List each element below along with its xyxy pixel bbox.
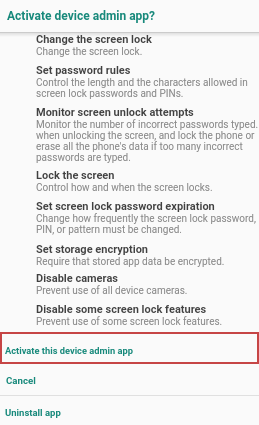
staticText: Prevent use of all device cameras. <box>36 285 188 297</box>
button[interactable]: Uninstall app <box>0 400 259 425</box>
staticText: Change the screen lock <box>36 33 152 46</box>
staticText: Activate this device admin app <box>5 345 134 356</box>
button[interactable]: Activate this device admin app <box>0 332 259 364</box>
staticText: Cancel <box>6 375 36 386</box>
staticText: Prevent use of some screen lock features… <box>36 316 223 328</box>
staticText: Require that stored app data be encrypte… <box>36 256 225 268</box>
staticText: Set password rules <box>36 64 131 77</box>
button[interactable]: Disable cameras <box>0 272 259 297</box>
button[interactable]: Set storage encryption <box>0 243 259 268</box>
staticText: Monitor the number of incorrect password… <box>36 119 259 164</box>
staticText: Set storage encryption <box>36 243 149 256</box>
button[interactable]: Lock the screen <box>0 169 259 194</box>
staticText: Set screen lock password expiration <box>36 200 215 213</box>
button[interactable]: Cancel <box>0 369 259 391</box>
staticText: Disable some screen lock features <box>36 303 207 316</box>
staticText: Lock the screen <box>36 169 115 182</box>
staticText: Control how and when the screen locks. <box>36 182 213 194</box>
button[interactable]: Set screen lock password expiration <box>0 200 259 236</box>
button[interactable]: Disable some screen lock features <box>0 303 259 328</box>
button[interactable]: Change the screen lock <box>0 33 259 58</box>
staticText: Change how frequently the screen lock pa… <box>36 213 256 236</box>
button[interactable]: Monitor screen unlock attempts <box>0 106 259 164</box>
staticText: Monitor screen unlock attempts <box>36 106 194 119</box>
button[interactable]: Set password rules <box>0 64 259 100</box>
staticText: Control the length and the characters al… <box>36 77 248 100</box>
staticText: Disable cameras <box>36 272 118 285</box>
staticText: Change the screen lock. <box>36 46 143 58</box>
staticText: Activate device admin app? <box>7 9 156 23</box>
staticText: Uninstall app <box>5 407 61 418</box>
